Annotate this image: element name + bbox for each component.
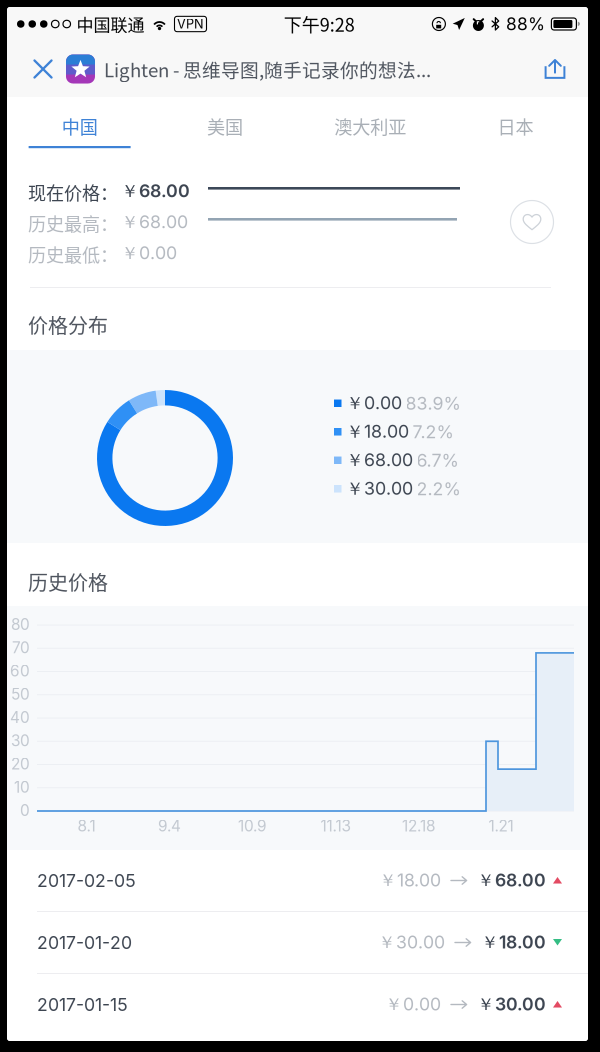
staticText: 日本 bbox=[497, 113, 533, 139]
staticText: 0 bbox=[20, 801, 30, 820]
staticText: 2017-01-20 bbox=[37, 932, 132, 953]
staticText: ￥68.00 bbox=[121, 211, 188, 233]
staticText: 2.2% bbox=[416, 478, 460, 499]
button[interactable]: Share bbox=[531, 41, 579, 97]
staticText: 9.4 bbox=[158, 817, 181, 835]
staticText: 美国 bbox=[207, 113, 243, 139]
staticText: ￥30.00 bbox=[346, 477, 413, 500]
button[interactable]: 2017-01-20 bbox=[7, 912, 588, 973]
staticText: 1.21 bbox=[488, 817, 513, 835]
staticText: VPN bbox=[177, 16, 204, 32]
staticText: ￥18.00 bbox=[481, 931, 546, 954]
staticText: 20 bbox=[11, 755, 30, 773]
staticText: ￥0.00 bbox=[385, 993, 441, 1016]
staticText: 中国 bbox=[62, 113, 98, 139]
staticText: ￥18.00 bbox=[346, 420, 409, 443]
staticText: 历史价格 bbox=[28, 567, 108, 596]
staticText: 30 bbox=[11, 731, 30, 750]
staticText: ￥0.00 bbox=[121, 242, 177, 264]
staticText: ￥30.00 bbox=[378, 931, 445, 954]
staticText: 11.13 bbox=[320, 817, 350, 835]
staticText: 2017-01-15 bbox=[37, 994, 128, 1015]
staticText: 现在价格： bbox=[28, 179, 118, 205]
staticText: 历史最低： bbox=[28, 241, 118, 267]
staticText: 下午9:28 bbox=[284, 11, 355, 37]
staticText: ￥68.00 bbox=[121, 180, 190, 202]
staticText: 8.1 bbox=[77, 817, 95, 835]
button[interactable]: 2017-01-15 bbox=[7, 974, 588, 1035]
staticText: 50 bbox=[11, 685, 30, 704]
staticText: 80 bbox=[11, 615, 30, 634]
button[interactable]: 2017-02-05 bbox=[7, 850, 588, 911]
button[interactable]: Close bbox=[20, 41, 66, 97]
button[interactable]: 日本 bbox=[443, 97, 588, 155]
button[interactable]: 中国 bbox=[7, 97, 152, 155]
staticText: ￥0.00 bbox=[346, 392, 402, 414]
staticText: 澳大利亚 bbox=[334, 113, 406, 139]
button[interactable]: 澳大利亚 bbox=[297, 97, 443, 155]
staticText: 60 bbox=[10, 662, 30, 680]
staticText: ￥68.00 bbox=[477, 869, 546, 892]
staticText: 历史最高： bbox=[28, 210, 118, 236]
staticText: Lighten - 思维导图,随手记录你的想法... bbox=[104, 55, 431, 82]
staticText: 价格分布 bbox=[28, 310, 108, 339]
staticText: 2017-02-05 bbox=[37, 870, 136, 891]
button[interactable]: 美国 bbox=[152, 97, 297, 155]
staticText: 6.7% bbox=[416, 449, 458, 471]
staticText: 7.2% bbox=[412, 421, 453, 442]
staticText: 70 bbox=[12, 638, 30, 657]
staticText: 10 bbox=[14, 778, 30, 797]
staticText: 中国联通 bbox=[76, 12, 144, 36]
staticText: ￥18.00 bbox=[379, 869, 441, 892]
staticText: 10.9 bbox=[238, 817, 267, 835]
staticText: 83.9% bbox=[405, 392, 460, 414]
staticText: ￥30.00 bbox=[477, 993, 546, 1016]
staticText: 88% bbox=[506, 13, 545, 34]
staticText: 12.18 bbox=[402, 817, 435, 835]
staticText: 40 bbox=[10, 708, 30, 727]
button[interactable]: Favorite bbox=[503, 193, 561, 251]
staticText: ￥68.00 bbox=[346, 449, 413, 471]
